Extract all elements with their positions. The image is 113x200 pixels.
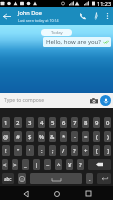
staticText: Type to compose bbox=[4, 97, 88, 104]
staticText: : bbox=[41, 147, 43, 155]
button[interactable]: : bbox=[38, 145, 45, 156]
staticText: Last seen today at 10:14 bbox=[18, 18, 59, 23]
staticText: & bbox=[50, 133, 55, 141]
staticText: ) bbox=[107, 133, 109, 141]
button[interactable]: ^ bbox=[55, 159, 62, 170]
staticText: 1 bbox=[4, 119, 8, 127]
staticText: $ bbox=[28, 133, 32, 141]
button[interactable]: < bbox=[2, 159, 8, 170]
staticText: ( bbox=[96, 133, 98, 141]
staticText: # bbox=[16, 133, 20, 141]
staticText: 8 bbox=[84, 119, 88, 127]
button[interactable]: % bbox=[38, 131, 45, 142]
button[interactable]: ! bbox=[2, 145, 10, 156]
button[interactable]: _ bbox=[22, 159, 29, 170]
staticText: - bbox=[74, 133, 76, 141]
staticText: = bbox=[84, 133, 88, 141]
button[interactable]: 0 bbox=[104, 117, 111, 128]
button[interactable]: 8 bbox=[82, 117, 89, 128]
staticText: @ bbox=[3, 133, 9, 141]
staticText: 7 bbox=[73, 119, 77, 127]
staticText: % bbox=[39, 133, 44, 141]
button[interactable]: + bbox=[82, 145, 89, 156]
staticText: 9 bbox=[95, 119, 99, 127]
button[interactable]: Back bbox=[19, 187, 32, 200]
button[interactable]: 3 bbox=[26, 117, 34, 128]
staticText: 0 bbox=[106, 119, 110, 127]
button[interactable]: & bbox=[49, 131, 56, 142]
staticText: ? bbox=[79, 161, 82, 169]
button[interactable]: abc bbox=[2, 173, 14, 184]
button[interactable]: # bbox=[14, 131, 22, 142]
staticText: | bbox=[35, 161, 39, 169]
button[interactable]: 6 bbox=[60, 117, 67, 128]
staticText: / bbox=[62, 147, 65, 155]
button[interactable]: 7 bbox=[71, 117, 78, 128]
button[interactable]: Home bbox=[50, 187, 63, 200]
button[interactable]: 5 bbox=[49, 117, 56, 128]
staticText: ^ bbox=[57, 161, 61, 169]
button[interactable]: " bbox=[14, 145, 22, 156]
staticText: Today bbox=[51, 30, 63, 36]
staticText: " bbox=[17, 147, 20, 155]
staticText: 11:23 bbox=[97, 0, 112, 7]
button[interactable]: - bbox=[71, 131, 78, 142]
staticText: [ bbox=[96, 147, 98, 155]
staticText: ! bbox=[5, 147, 7, 155]
button[interactable]: Recents bbox=[82, 187, 95, 200]
staticText: 2 bbox=[16, 119, 20, 127]
button[interactable]: 4 bbox=[38, 117, 45, 128]
button[interactable]: @ bbox=[2, 131, 10, 142]
button[interactable]: ) bbox=[104, 131, 111, 142]
button[interactable]: ? bbox=[71, 145, 78, 156]
button[interactable]: [ bbox=[93, 145, 100, 156]
button[interactable]: Space bbox=[30, 173, 82, 184]
staticText: ¥ bbox=[68, 161, 72, 169]
button[interactable]: ; bbox=[49, 145, 56, 156]
button[interactable]: * bbox=[60, 131, 67, 142]
button[interactable]: $ bbox=[26, 131, 34, 142]
staticText: ' bbox=[29, 147, 31, 155]
button[interactable]: Voice message bbox=[100, 95, 111, 106]
button[interactable]: Attach bbox=[90, 7, 102, 25]
button[interactable]: More options bbox=[102, 7, 113, 25]
button[interactable]: / bbox=[60, 145, 67, 156]
button[interactable]: Back bbox=[0, 7, 13, 25]
button[interactable]: ( bbox=[93, 131, 100, 142]
button[interactable]: ? bbox=[77, 159, 84, 170]
staticText: John Doe bbox=[18, 9, 42, 17]
button[interactable]: | bbox=[33, 159, 40, 170]
button[interactable]: Backspace bbox=[88, 159, 111, 170]
button[interactable]: Call bbox=[76, 7, 90, 25]
button[interactable]: . bbox=[86, 173, 93, 184]
button[interactable]: ~ bbox=[44, 159, 51, 170]
button[interactable]: ] bbox=[104, 145, 111, 156]
staticText: + bbox=[84, 147, 88, 155]
staticText: ? bbox=[73, 147, 76, 155]
staticText: ] bbox=[107, 147, 109, 155]
button[interactable]: Today bbox=[41, 29, 72, 36]
staticText: < bbox=[3, 161, 7, 169]
button[interactable]: ' bbox=[26, 145, 34, 156]
staticText: ; bbox=[52, 147, 54, 155]
button[interactable]: ¥ bbox=[66, 159, 73, 170]
staticText: abc bbox=[4, 176, 12, 182]
staticText: > bbox=[13, 161, 17, 169]
button[interactable]: Hello, how are you? bbox=[43, 37, 111, 47]
button[interactable]: 1 bbox=[2, 117, 10, 128]
button[interactable]: 2 bbox=[14, 117, 22, 128]
button[interactable]: 9 bbox=[93, 117, 100, 128]
staticText: Hello, how are you? bbox=[46, 38, 101, 46]
button[interactable]: > bbox=[12, 159, 18, 170]
staticText: * bbox=[62, 133, 66, 141]
staticText: 6 bbox=[62, 119, 66, 127]
staticText: 3 bbox=[28, 119, 32, 127]
staticText: ~ bbox=[46, 161, 50, 169]
button[interactable]: Enter bbox=[97, 173, 111, 184]
staticText: . bbox=[89, 175, 91, 183]
staticText: _ bbox=[24, 161, 27, 169]
button[interactable]: Emoji bbox=[18, 173, 26, 184]
staticText: 5 bbox=[51, 119, 55, 127]
button[interactable]: Camera bbox=[88, 95, 100, 107]
button[interactable]: = bbox=[82, 131, 89, 142]
